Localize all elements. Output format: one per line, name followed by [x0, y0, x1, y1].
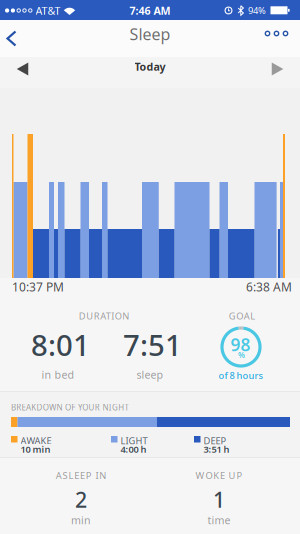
staticText: 2 [75, 485, 87, 514]
staticText: GOAL [229, 310, 255, 322]
staticText: ASLEEP IN [56, 469, 106, 482]
staticText: 98 [230, 333, 250, 356]
staticText: 4:00 h [120, 443, 146, 455]
staticText: Sleep [129, 23, 170, 45]
staticText: 7:46 AM [129, 3, 170, 18]
staticText: 1 [213, 485, 225, 514]
button[interactable]: Next day [264, 54, 291, 83]
staticText: BREAKDOWN OF YOUR NIGHT [11, 402, 129, 413]
staticText: 8:01 [31, 325, 90, 364]
staticText: 94% [248, 4, 266, 17]
staticText: % [238, 350, 245, 360]
staticText: Today [134, 59, 165, 74]
staticText: sleep [136, 367, 163, 382]
staticText: 10:37 PM [12, 279, 64, 295]
button[interactable]: Today [124, 53, 175, 80]
staticText: 3:51 h [203, 443, 229, 455]
staticText: 7:51 [123, 325, 182, 364]
staticText: time [207, 513, 230, 527]
button[interactable]: Previous day [9, 54, 36, 83]
staticText: of 8 hours [218, 369, 263, 382]
staticText: DURATION [79, 310, 129, 322]
button[interactable]: More options [254, 20, 299, 47]
staticText: WOKE UP [196, 469, 242, 482]
staticText: DEEP [203, 434, 226, 447]
staticText: in bed [41, 367, 74, 382]
staticText: min [71, 513, 91, 527]
staticText: LIGHT [120, 434, 147, 447]
button[interactable]: Back [0, 20, 27, 57]
staticText: AWAKE [20, 434, 51, 447]
staticText: 6:38 AM [246, 279, 292, 295]
staticText: AT&T [35, 3, 60, 18]
staticText: 10 min [20, 443, 50, 455]
